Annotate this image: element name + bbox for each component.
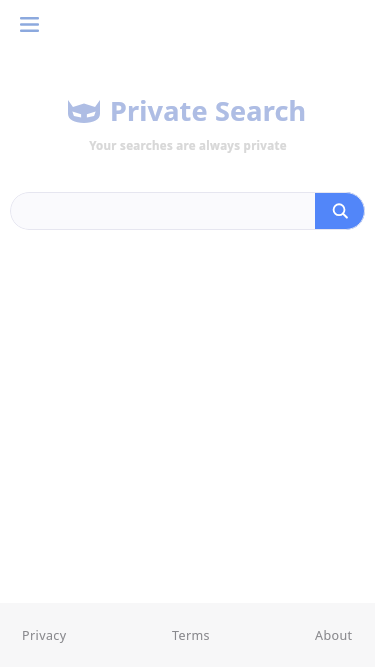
button[interactable]: Privacy	[20, 621, 69, 650]
button[interactable]: About	[313, 621, 355, 650]
button[interactable]: Search input	[10, 192, 315, 230]
staticText: Terms	[172, 627, 210, 644]
staticText: Your searches are always private	[89, 138, 287, 154]
staticText: About	[315, 627, 353, 644]
button[interactable]: Terms	[170, 621, 212, 650]
staticText: Privacy	[22, 627, 67, 644]
button[interactable]: Menu	[12, 9, 46, 39]
button[interactable]: Search	[315, 192, 365, 230]
staticText: Private Search	[110, 92, 307, 129]
